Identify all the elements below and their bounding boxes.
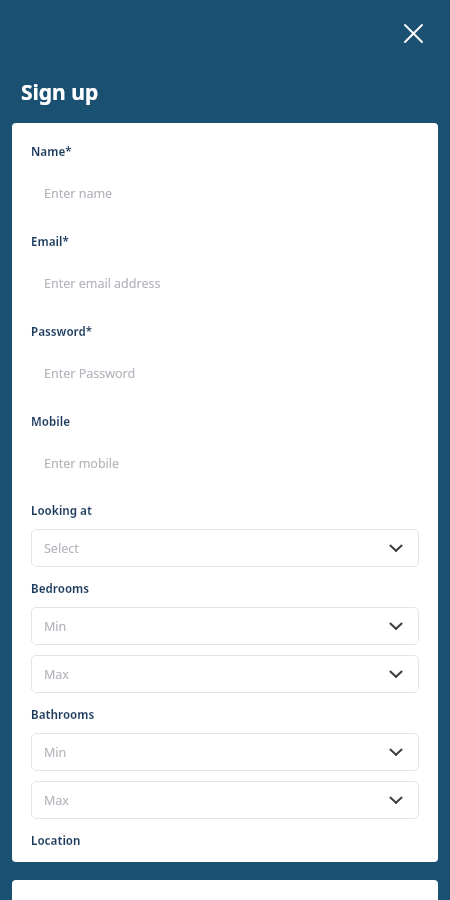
button[interactable]: Min xyxy=(31,733,419,771)
staticText: Max xyxy=(44,666,386,683)
staticText: Enter Password xyxy=(44,365,136,382)
staticText: Password* xyxy=(31,324,93,340)
button[interactable]: Select xyxy=(31,529,419,567)
staticText: Select xyxy=(44,540,386,557)
staticText: Enter email address xyxy=(44,275,161,292)
button[interactable]: Close xyxy=(397,17,429,49)
staticText: Name* xyxy=(31,144,72,160)
staticText: Enter mobile xyxy=(44,455,120,472)
button[interactable] xyxy=(12,880,438,900)
staticText: Max xyxy=(44,792,386,809)
staticText: Email* xyxy=(31,234,69,250)
button[interactable]: Enter mobile xyxy=(31,450,419,476)
staticText: Sign up xyxy=(21,78,99,107)
button[interactable]: Min xyxy=(31,607,419,645)
button[interactable]: Max xyxy=(31,781,419,819)
staticText: Min xyxy=(44,744,386,761)
staticText: Min xyxy=(44,618,386,635)
button[interactable]: Enter email address xyxy=(31,270,419,296)
staticText: Looking at xyxy=(31,503,92,519)
staticText: Bathrooms xyxy=(31,707,95,723)
staticText: Location xyxy=(31,833,81,849)
button[interactable]: Enter Password xyxy=(31,360,419,386)
button[interactable]: Max xyxy=(31,655,419,693)
staticText: Mobile xyxy=(31,414,71,430)
button[interactable]: Enter name xyxy=(31,180,419,206)
staticText: Enter name xyxy=(44,185,113,202)
staticText: Bedrooms xyxy=(31,581,90,597)
